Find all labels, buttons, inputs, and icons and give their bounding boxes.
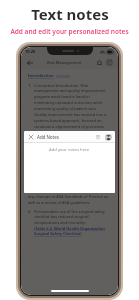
- staticText: 10:28: [25, 49, 36, 54]
- staticText: Add and edit your personalized notes: [10, 27, 129, 36]
- button[interactable]: Back: [25, 58, 35, 68]
- staticText: Add your notes here: [49, 147, 90, 153]
- staticText: Text notes: [31, 4, 109, 24]
- staticText: (Table 6-2. World Health Organization Su…: [34, 226, 111, 237]
- staticText: Risk Management: [47, 60, 82, 65]
- staticText: Add Notes: [37, 134, 59, 140]
- button[interactable]: Save: [104, 133, 112, 141]
- staticText: Risk management techniques called patien…: [28, 139, 111, 168]
- staticText: 2.: [28, 209, 32, 214]
- staticText: 1.: [28, 83, 32, 88]
- staticText: Perioperative use of the surgical safety…: [34, 209, 111, 226]
- staticText: Conceptual Introduction. Risk management…: [34, 83, 111, 136]
- button[interactable]: Delete: [94, 133, 102, 141]
- button[interactable]: Add your notes here: [24, 143, 115, 193]
- button[interactable]: Close: [27, 133, 35, 141]
- staticText: Introduction: [28, 73, 54, 79]
- button[interactable]: Home: [95, 58, 104, 67]
- button[interactable]: Settings: [105, 58, 114, 67]
- staticText: Defend injury are vigorous, up-to-date k…: [28, 171, 111, 206]
